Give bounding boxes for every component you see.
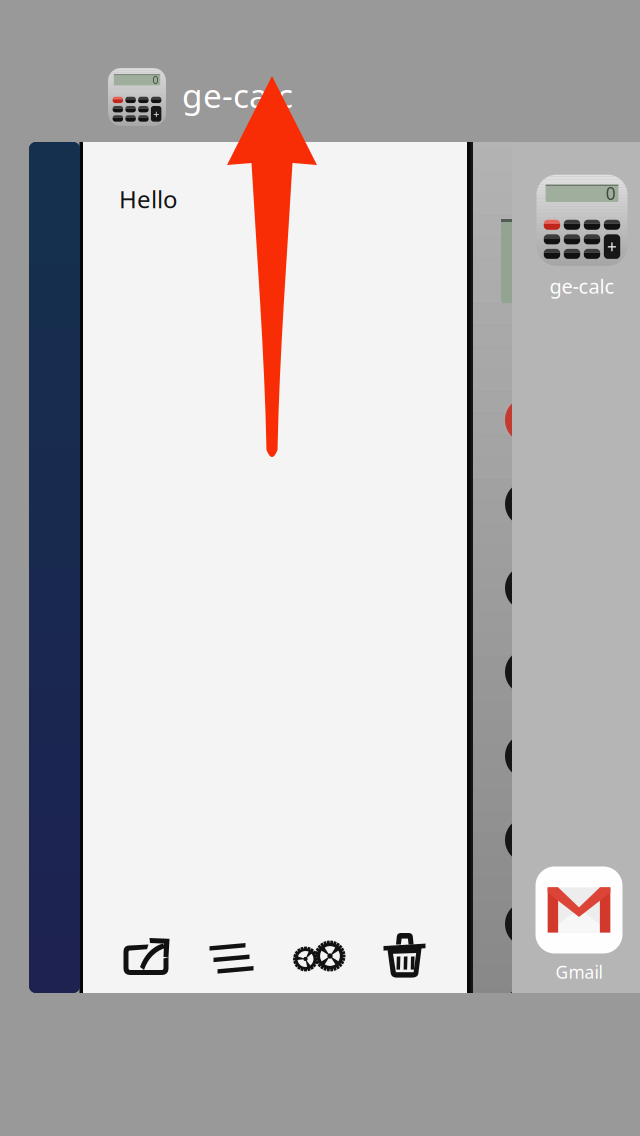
staticText: Gmail <box>555 960 602 983</box>
button[interactable]: 0 <box>536 175 627 299</box>
button[interactable]: Delete <box>359 923 449 985</box>
staticText: Hello <box>119 183 178 215</box>
staticText: + <box>607 235 617 258</box>
staticText: 0 <box>152 73 158 87</box>
button[interactable]: Gmail <box>535 866 622 983</box>
staticText: + <box>153 107 159 121</box>
button[interactable]: Settings <box>274 925 364 987</box>
staticText: ge-calc <box>549 273 614 299</box>
button[interactable]: Home screen <box>470 142 640 993</box>
staticText: 0 <box>606 182 616 205</box>
button[interactable]: Outline <box>186 925 276 987</box>
staticText: ge-calc <box>182 73 293 117</box>
button[interactable]: Share <box>100 925 190 987</box>
button[interactable]: Previous app <box>29 142 80 993</box>
